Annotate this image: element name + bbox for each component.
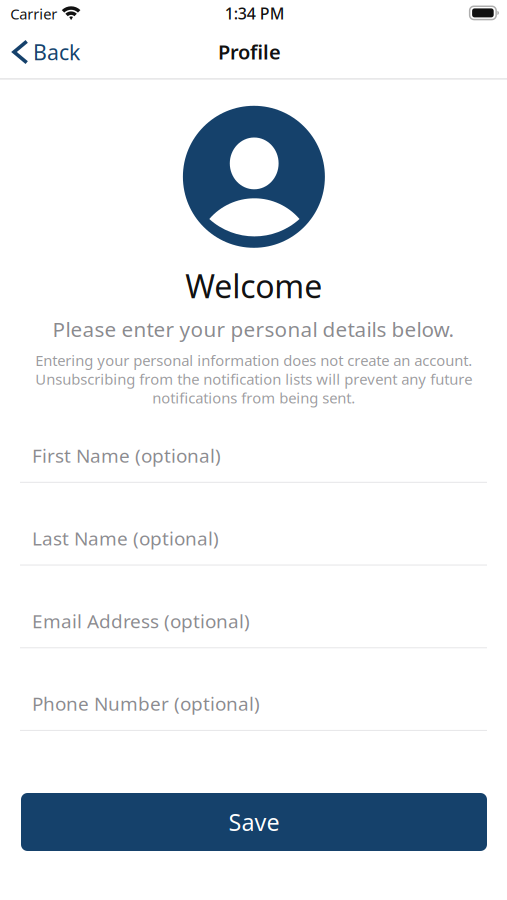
staticText: Profile	[218, 38, 281, 65]
staticText: Carrier	[10, 4, 57, 24]
button[interactable]: First Name (optional)	[20, 400, 487, 483]
staticText: Last Name (optional)	[32, 525, 219, 551]
button[interactable]: Phone Number (optional)	[20, 648, 487, 731]
button[interactable]: Back	[0, 27, 96, 77]
staticText: Phone Number (optional)	[32, 691, 260, 716]
staticText: Back	[33, 37, 80, 67]
staticText: Entering your personal information does …	[35, 350, 472, 408]
staticText: Save	[228, 806, 279, 838]
staticText: Welcome	[185, 264, 322, 308]
button[interactable]: Last Name (optional)	[20, 483, 487, 566]
staticText: Please enter your personal details below…	[53, 315, 455, 343]
staticText: First Name (optional)	[32, 442, 221, 468]
staticText: Email Address (optional)	[32, 608, 250, 634]
button[interactable]: Save	[21, 793, 487, 851]
staticText: 1:34 PM	[225, 2, 285, 24]
button[interactable]: Email Address (optional)	[20, 566, 487, 648]
